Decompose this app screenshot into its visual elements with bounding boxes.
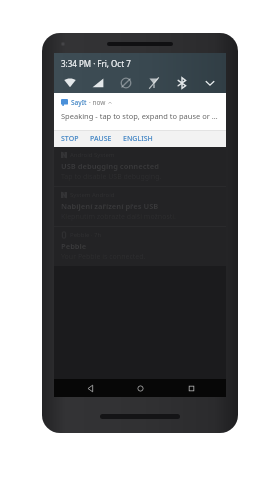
button[interactable]: Home: [125, 379, 155, 397]
button[interactable]: STOP: [60, 132, 80, 146]
button[interactable]: Recent apps: [176, 379, 206, 397]
staticText: Nabíjení zařízení přes USB: [61, 201, 159, 211]
staticText: STOP: [61, 134, 79, 144]
staticText: Pebble: [61, 241, 87, 251]
staticText: ENGLISH: [123, 134, 153, 144]
staticText: Speaking - tap to stop, expand to pause …: [61, 111, 219, 121]
button[interactable]: Bluetooth: [172, 73, 192, 93]
button[interactable]: Expand quick settings: [200, 73, 220, 93]
button[interactable]: System Android: [54, 187, 226, 226]
button[interactable]: Mobile signal: [88, 73, 108, 93]
button[interactable]: Flashlight: [144, 73, 164, 93]
button[interactable]: Do not disturb: [116, 73, 136, 93]
staticText: PAUSE: [90, 134, 112, 144]
button[interactable]: Android System: [54, 147, 226, 186]
button[interactable]: SayIt: [54, 93, 226, 130]
staticText: 3:34 PM · Fri, Oct 7: [61, 58, 131, 69]
button[interactable]: PAUSE: [89, 132, 113, 146]
staticText: SayIt: [71, 98, 87, 107]
staticText: · now: [89, 98, 106, 107]
button[interactable]: Wi-Fi: [60, 73, 80, 93]
button[interactable]: Back: [75, 379, 105, 397]
staticText: USB debugging connected: [61, 161, 159, 171]
button[interactable]: ENGLISH: [122, 132, 154, 146]
